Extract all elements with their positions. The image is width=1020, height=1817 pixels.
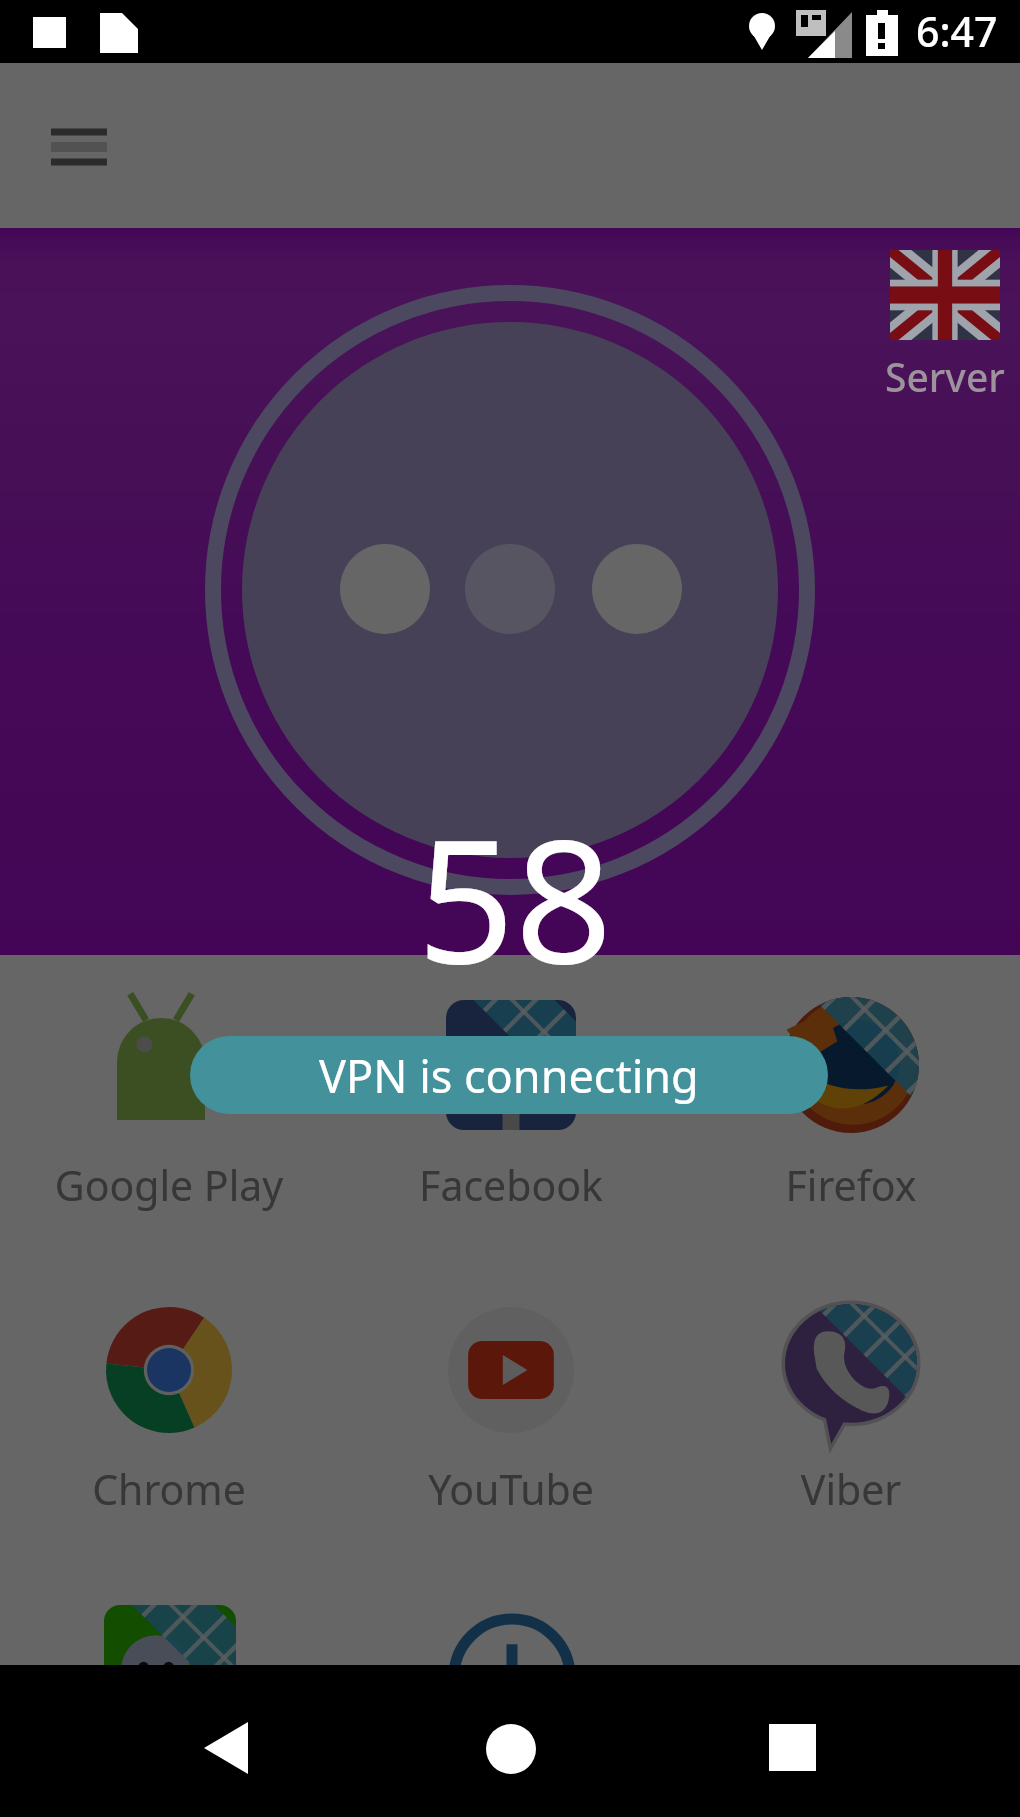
button[interactable]: VPN is connecting (190, 1036, 828, 1114)
staticText: VPN is connecting (319, 1045, 699, 1106)
staticText: Server (885, 350, 1005, 403)
staticText: YouTube (351, 1461, 671, 1517)
staticText: Google Play (9, 1157, 329, 1213)
button[interactable]: Home (435, 1711, 587, 1817)
staticText: Firefox (691, 1157, 1011, 1213)
button[interactable]: Back (150, 1711, 302, 1817)
staticText: 6:47 (916, 3, 998, 59)
button[interactable]: Recent apps (717, 1711, 869, 1817)
staticText: Viber (691, 1461, 1011, 1517)
staticText: Chrome (9, 1461, 329, 1517)
staticText: 58 (417, 780, 613, 1013)
button[interactable]: Server (880, 250, 1010, 403)
button[interactable]: Open navigation drawer (29, 96, 129, 196)
staticText: Facebook (351, 1157, 671, 1213)
